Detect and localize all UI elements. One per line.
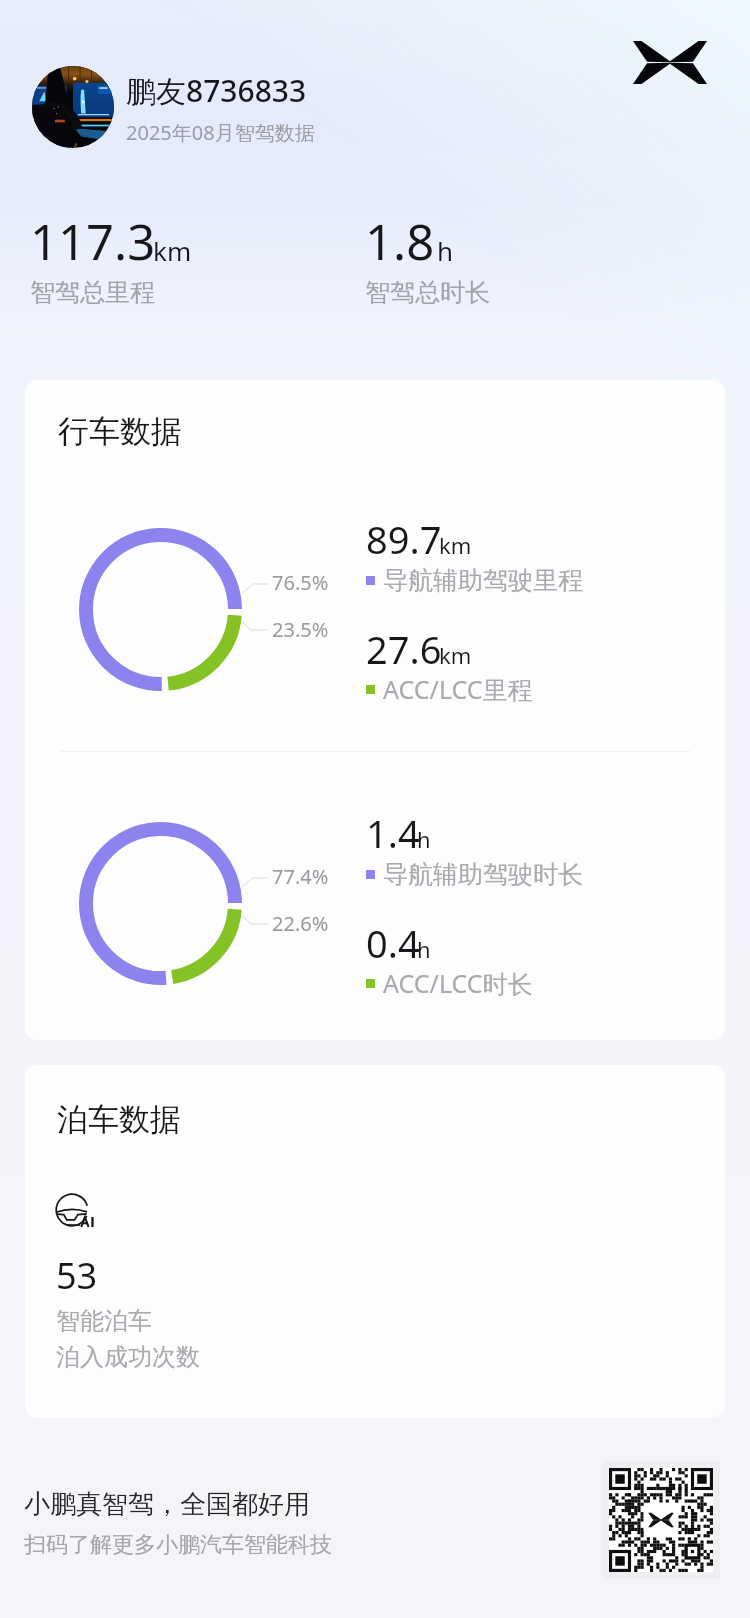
button[interactable]: User avatar [32, 66, 114, 148]
staticText: km [439, 640, 472, 670]
staticText: 23.5% [272, 616, 329, 643]
staticText: 53 [56, 1251, 98, 1300]
button[interactable]: QR code [602, 1461, 720, 1579]
staticText: h [417, 824, 431, 854]
staticText: 76.5% [272, 569, 329, 596]
staticText: ACC/LCC里程 [383, 672, 533, 706]
staticText: h [417, 934, 431, 964]
staticText: 77.4% [272, 863, 329, 890]
staticText: km [439, 530, 472, 560]
staticText: ACC/LCC时长 [383, 966, 533, 1000]
staticText: 智驾总里程 [30, 277, 155, 308]
staticText: 扫码了解更多小鹏汽车智能科技 [24, 1531, 332, 1559]
button[interactable]: 行车数据 [25, 380, 725, 1040]
staticText: km [153, 233, 192, 268]
staticText: 智驾总时长 [365, 277, 490, 308]
staticText: 0.4 [366, 917, 420, 969]
staticText: h [437, 233, 454, 268]
staticText: 1.8 [365, 208, 435, 275]
staticText: 89.7 [366, 513, 442, 565]
staticText: 导航辅助驾驶时长 [383, 859, 583, 890]
staticText: 泊入成功次数 [56, 1342, 200, 1372]
button[interactable]: XPeng logo [633, 41, 707, 84]
staticText: 小鹏真智驾，全国都好用 [24, 1488, 310, 1521]
staticText: 泊车数据 [57, 1100, 181, 1139]
staticText: 行车数据 [58, 412, 182, 451]
staticText: 鹏友8736833 [126, 70, 307, 111]
button[interactable]: 泊车数据 [25, 1065, 725, 1418]
staticText: 22.6% [272, 910, 329, 937]
staticText: 1.4 [366, 807, 420, 859]
staticText: 智能泊车 [56, 1306, 152, 1336]
staticText: 导航辅助驾驶里程 [383, 565, 583, 596]
staticText: 27.6 [366, 623, 442, 675]
staticText: 2025年08月智驾数据 [126, 119, 315, 146]
staticText: 117.3 [30, 208, 156, 275]
